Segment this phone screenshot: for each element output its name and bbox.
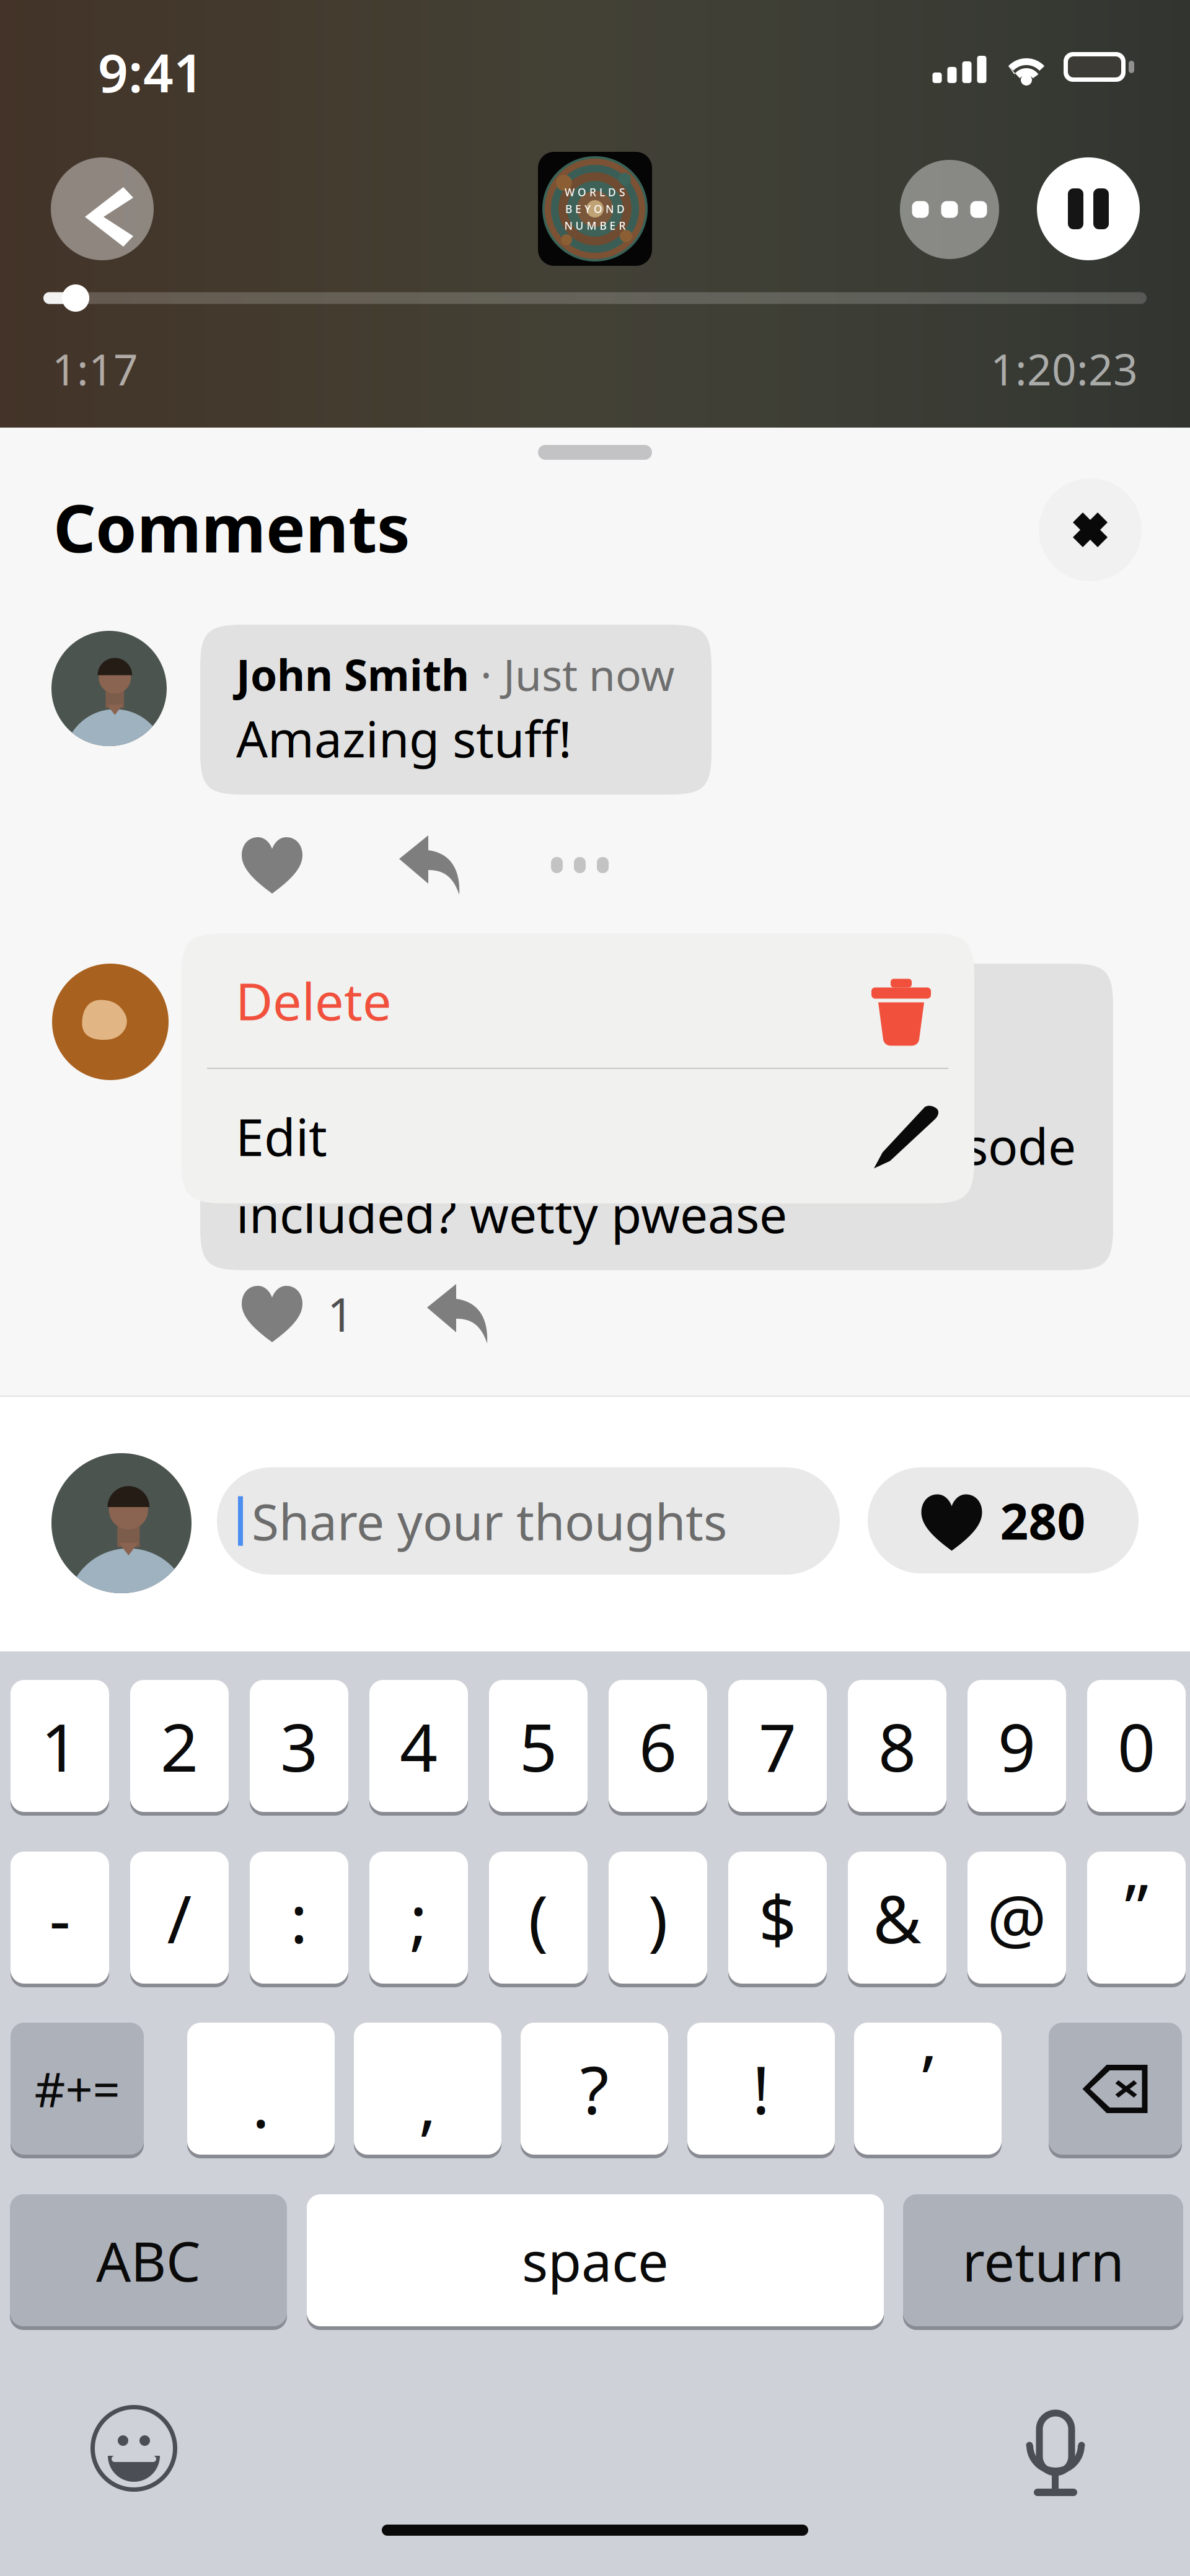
button[interactable]: 1	[11, 1678, 109, 1814]
button[interactable]: @	[967, 1850, 1066, 1985]
staticText: 6	[639, 1702, 677, 1790]
staticText: @	[987, 1874, 1047, 1961]
staticText: 3	[280, 1702, 318, 1790]
button[interactable]: Delete	[181, 933, 974, 1068]
staticText: 1	[327, 1283, 354, 1344]
staticText: N U M B E R	[564, 218, 626, 233]
staticText: 8	[878, 1702, 916, 1790]
staticText: 1:20:23	[990, 340, 1138, 397]
staticText: return	[962, 2224, 1124, 2297]
button[interactable]: Emoji	[90, 2405, 177, 2492]
staticText: Delete	[236, 966, 392, 1034]
button[interactable]: Back	[51, 157, 154, 260]
button[interactable]: 4	[369, 1678, 468, 1814]
staticText: -	[49, 1874, 70, 1961]
staticText: (	[528, 1874, 548, 1961]
button[interactable]: Pause	[1037, 157, 1140, 260]
staticText: Amazing stuff!	[236, 705, 572, 771]
button[interactable]: !	[687, 2021, 835, 2156]
button[interactable]: )	[609, 1850, 707, 1985]
button[interactable]: 9	[967, 1678, 1066, 1814]
button[interactable]: 0	[1087, 1678, 1186, 1814]
staticText: &	[873, 1874, 921, 1961]
staticText: /	[167, 1874, 192, 1961]
button[interactable]: return	[903, 2192, 1183, 2328]
staticText: 2	[161, 1702, 198, 1790]
button[interactable]: 3	[250, 1678, 348, 1814]
button[interactable]: Reply	[426, 1283, 487, 1345]
button[interactable]: 5	[489, 1678, 588, 1814]
staticText: 1	[41, 1702, 79, 1790]
button[interactable]: :	[250, 1850, 348, 1985]
button[interactable]: $	[728, 1850, 827, 1985]
button[interactable]: space	[307, 2192, 884, 2328]
button[interactable]: Like	[241, 830, 307, 900]
button[interactable]: (	[489, 1850, 588, 1985]
staticText: !	[752, 2045, 770, 2132]
staticText: 7	[759, 1702, 796, 1790]
staticText: ,	[419, 2058, 437, 2146]
staticText: :	[290, 1874, 308, 1961]
staticText: Edit	[236, 1102, 327, 1170]
staticText: 9:41	[98, 37, 204, 107]
button[interactable]: Share your thoughts	[217, 1467, 840, 1575]
staticText: 9	[998, 1702, 1036, 1790]
button[interactable]: ”	[1087, 1850, 1186, 1985]
button[interactable]: ?	[521, 2021, 668, 2156]
staticText: Bob Brown	[236, 985, 467, 1042]
button[interactable]: Close	[1039, 478, 1142, 581]
button[interactable]: Edit	[181, 1069, 974, 1203]
button[interactable]: 8	[848, 1678, 946, 1814]
button[interactable]: ,	[354, 2021, 501, 2156]
button[interactable]: ’	[854, 2021, 1002, 2156]
button[interactable]: 7	[728, 1678, 827, 1814]
button[interactable]: Dictation	[1026, 2401, 1085, 2485]
staticText: · Just now	[469, 646, 674, 703]
staticText: could get a transcript of the episode	[236, 1113, 1076, 1178]
staticText: 1:17	[52, 340, 138, 397]
staticText: $	[759, 1874, 796, 1961]
button[interactable]: Like	[241, 1279, 354, 1348]
button[interactable]: More	[900, 160, 999, 259]
staticText: #+=	[34, 2057, 120, 2120]
button[interactable]: ;	[369, 1850, 468, 1985]
staticText: 5	[519, 1702, 557, 1790]
button[interactable]: More options	[551, 834, 609, 896]
staticText: 0	[1117, 1702, 1155, 1790]
staticText: included? wetty pwease	[236, 1181, 787, 1247]
staticText: )	[648, 1874, 668, 1961]
staticText: John Smith	[236, 646, 469, 703]
button[interactable]: 280	[868, 1467, 1139, 1573]
staticText: B E Y O N D	[565, 202, 625, 216]
button[interactable]: 6	[609, 1678, 707, 1814]
staticText: 4	[400, 1702, 438, 1790]
staticText: Comments	[53, 483, 410, 571]
button[interactable]: Delete	[1049, 2021, 1182, 2156]
staticText: ”	[1125, 1863, 1148, 1950]
staticText: 280	[1000, 1487, 1086, 1553]
staticText: Share your thoughts	[252, 1488, 727, 1554]
staticText: Loved this one! Any chance we	[236, 1044, 945, 1110]
staticText: ?	[580, 2045, 609, 2132]
button[interactable]: #+=	[11, 2021, 144, 2156]
staticText: ’	[922, 2034, 934, 2121]
staticText: space	[522, 2224, 669, 2297]
button[interactable]: ABC	[10, 2192, 287, 2328]
button[interactable]: 2	[130, 1678, 229, 1814]
button[interactable]: /	[130, 1850, 229, 1985]
staticText: ;	[410, 1874, 428, 1961]
button[interactable]: .	[187, 2021, 335, 2156]
button[interactable]: Reply	[399, 834, 459, 896]
button[interactable]: &	[848, 1850, 946, 1985]
button[interactable]: -	[11, 1850, 109, 1985]
staticText: ABC	[96, 2224, 201, 2297]
staticText: .	[252, 2058, 270, 2146]
staticText: W O R L D S	[565, 185, 625, 199]
